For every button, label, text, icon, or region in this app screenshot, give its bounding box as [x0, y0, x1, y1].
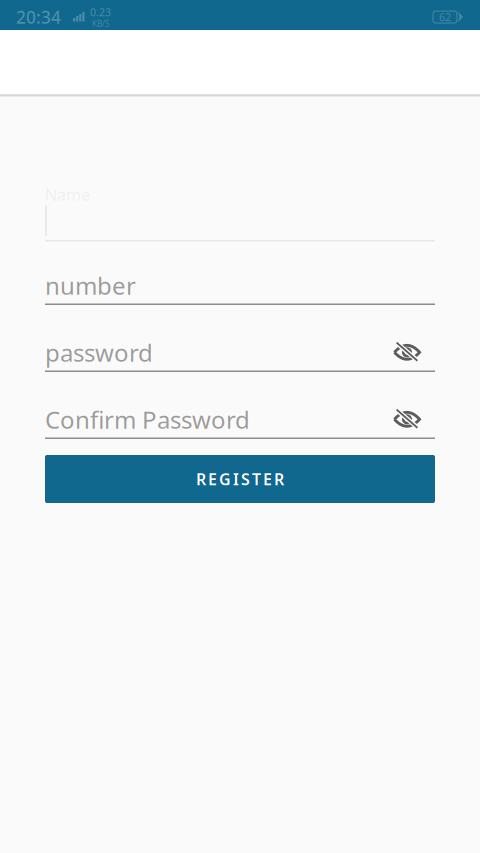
staticText: password: [45, 337, 153, 368]
button[interactable]: Show password: [387, 402, 435, 437]
button[interactable]: password: [45, 334, 435, 372]
staticText: 62: [439, 10, 451, 24]
staticText: number: [45, 270, 136, 301]
button[interactable]: number: [45, 267, 435, 305]
staticText: REGISTER: [196, 468, 284, 490]
staticText: Confirm Password: [45, 404, 250, 435]
button[interactable]: Confirm Password: [45, 401, 435, 439]
staticText: 20:34: [16, 5, 61, 28]
button[interactable]: Show password: [387, 335, 435, 370]
staticText: 0.23: [90, 5, 111, 19]
staticText: KB/S: [92, 18, 109, 29]
staticText: Name: [45, 184, 90, 205]
button[interactable]: REGISTER: [45, 455, 435, 503]
